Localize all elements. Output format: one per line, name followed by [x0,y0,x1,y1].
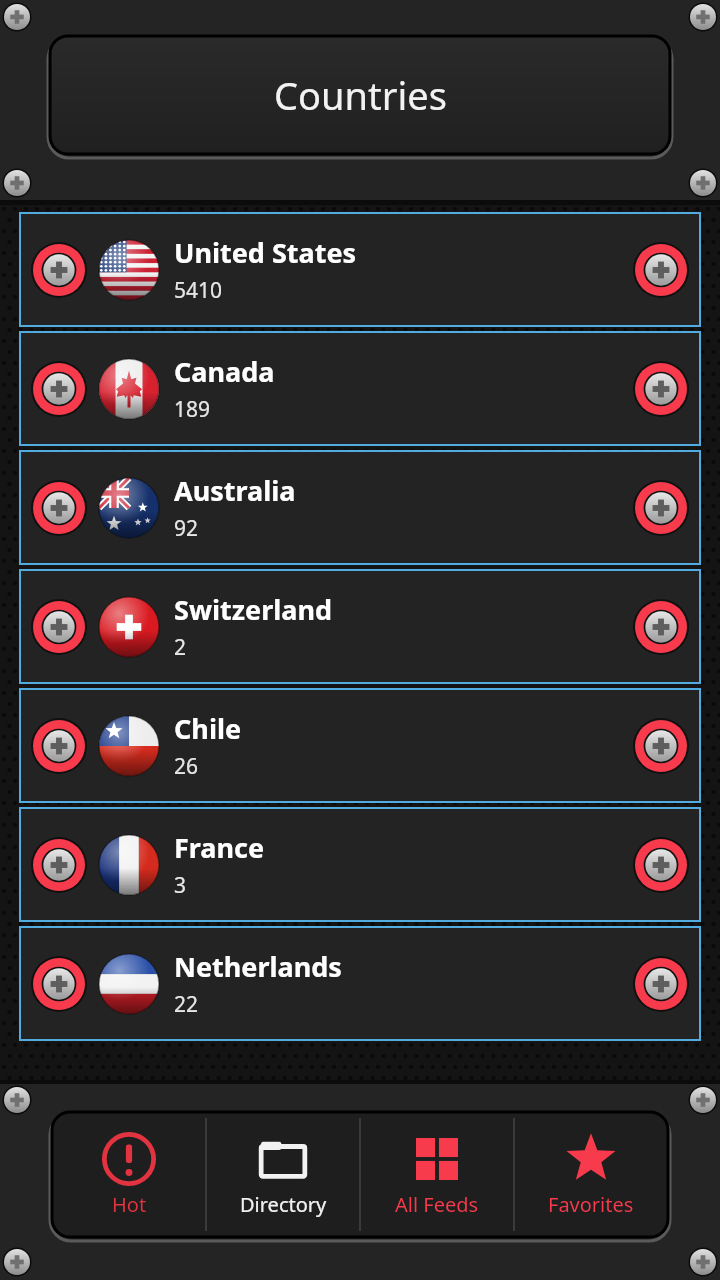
staticText: Directory [240,1191,327,1218]
button[interactable]: Hot [52,1112,206,1237]
button[interactable]: Add Switzerland to favorites [30,598,88,656]
staticText: France [174,829,265,866]
staticText: 5410 [174,276,223,305]
button[interactable]: Add Chile to favorites [20,689,700,802]
staticText: Netherlands [174,948,342,985]
staticText: 22 [174,990,199,1019]
staticText: Australia [174,472,296,509]
button[interactable]: Add United States to favorites [20,213,700,326]
button[interactable]: Add Chile to favorites [30,717,88,775]
staticText: Canada [174,353,275,390]
button[interactable]: Add Australia to favorites [30,479,88,537]
staticText: 92 [174,514,199,543]
button[interactable]: Open Netherlands [632,955,690,1013]
button[interactable]: Add Canada to favorites [30,360,88,418]
staticText: 189 [174,395,211,424]
button[interactable]: Open Switzerland [632,598,690,656]
staticText: United States [174,234,357,271]
staticText: Favorites [548,1191,634,1218]
button[interactable]: Open Canada [632,360,690,418]
staticText: Chile [174,710,242,747]
button[interactable]: Open France [632,836,690,894]
button[interactable]: Open Chile [632,717,690,775]
button[interactable]: Add France to favorites [30,836,88,894]
staticText: 2 [174,633,187,662]
button[interactable]: Open United States [632,241,690,299]
staticText: All Feeds [395,1191,479,1218]
button[interactable]: Add Netherlands to favorites [30,955,88,1013]
button[interactable]: Add United States to favorites [30,241,88,299]
staticText: 3 [174,871,187,900]
button[interactable]: Directory [206,1112,360,1237]
staticText: Hot [112,1191,147,1218]
staticText: Switzerland [174,591,333,628]
button[interactable]: Add Switzerland to favorites [20,570,700,683]
button[interactable]: All Feeds [360,1112,514,1237]
button[interactable]: Open Australia [632,479,690,537]
button[interactable]: Add Australia to favorites [20,451,700,564]
button[interactable]: Add Canada to favorites [20,332,700,445]
staticText: Countries [274,69,447,121]
button[interactable]: Favorites [514,1112,668,1237]
button[interactable]: Add Netherlands to favorites [20,927,700,1040]
staticText: 26 [174,752,199,781]
button[interactable]: Add France to favorites [20,808,700,921]
